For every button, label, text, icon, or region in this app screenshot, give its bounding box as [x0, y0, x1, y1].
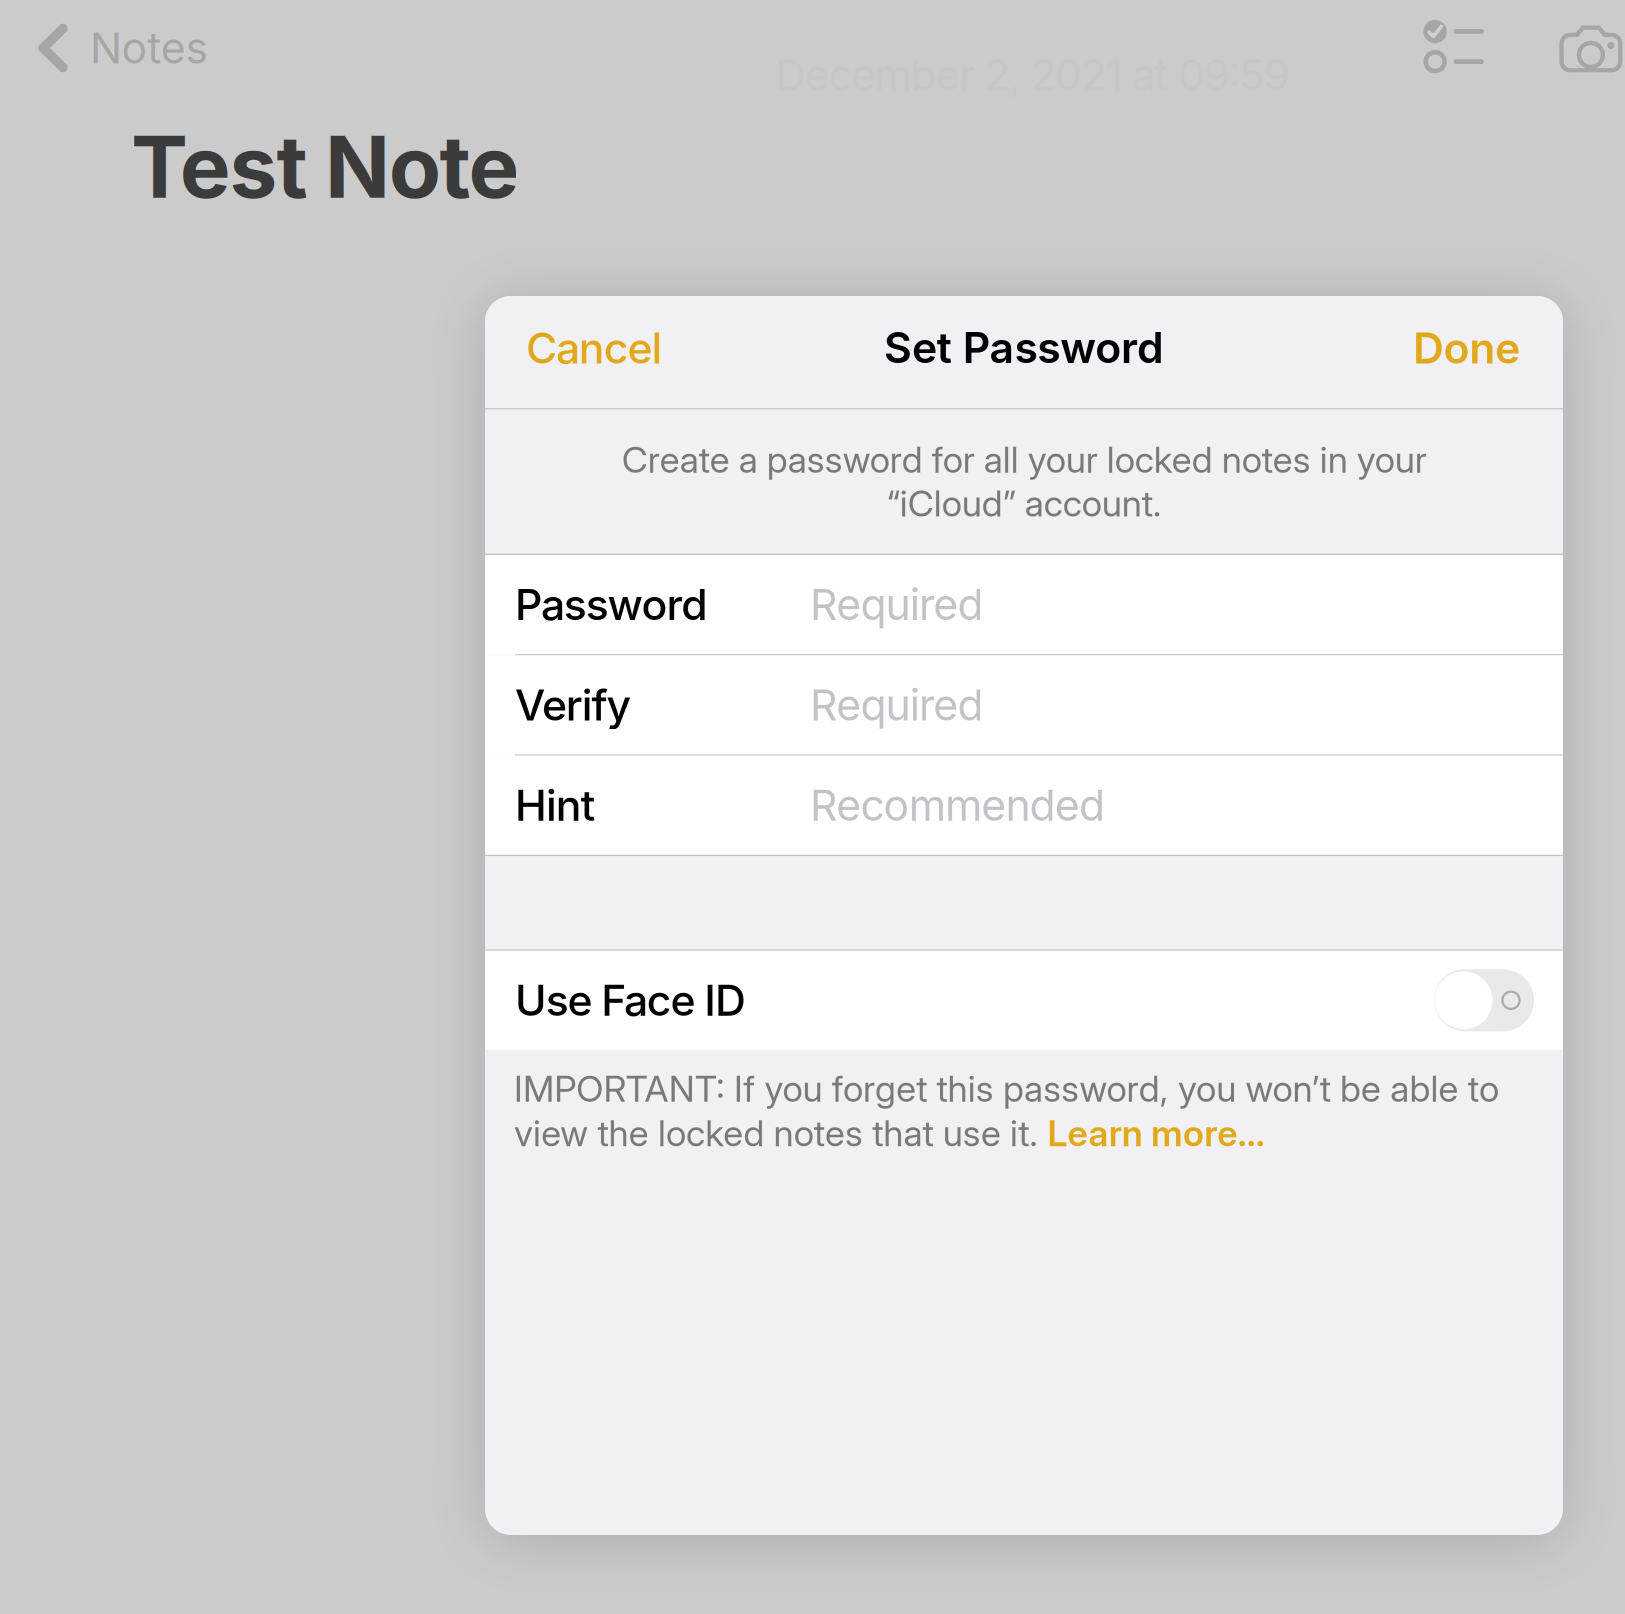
button[interactable]: Learn more... [1047, 1111, 1265, 1155]
button[interactable]: Back to Notes [0, 0, 208, 96]
staticText: Learn more... [1047, 1111, 1265, 1155]
button[interactable]: Hint [485, 756, 1563, 855]
staticText: Recommended [810, 779, 1105, 831]
staticText: Password [515, 579, 707, 630]
button[interactable]: Checklist [1409, 0, 1498, 96]
staticText: Create a password for all your locked no… [621, 438, 1426, 525]
staticText: Hint [515, 779, 596, 831]
staticText: Notes [90, 22, 208, 74]
staticText: view the locked notes that use it. [514, 1111, 1047, 1155]
button[interactable]: Camera [1498, 0, 1625, 97]
staticText: IMPORTANT: If you forget this password, … [514, 1067, 1499, 1110]
staticText: Required [810, 579, 983, 630]
staticText: Done [1413, 322, 1520, 374]
staticText: Cancel [526, 322, 662, 374]
button[interactable]: Cancel [520, 306, 668, 398]
staticText: Verify [515, 679, 631, 731]
staticText: Required [810, 679, 983, 731]
staticText: Use Face ID [515, 974, 746, 1026]
button[interactable]: Verify [485, 655, 1563, 754]
button[interactable]: Use Face ID [485, 951, 1563, 1050]
staticText: Test Note [131, 115, 519, 218]
staticText: Set Password [884, 322, 1164, 373]
button[interactable]: Password [485, 555, 1563, 654]
button[interactable]: Done [1407, 306, 1526, 398]
